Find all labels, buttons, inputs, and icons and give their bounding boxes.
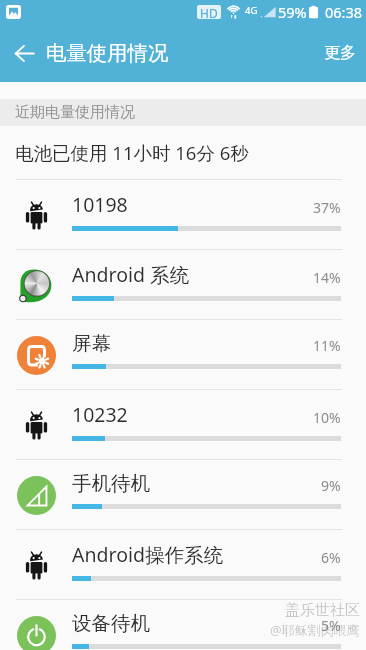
button[interactable]: 屏幕 — [0, 319, 366, 389]
button[interactable]: 手机待机 — [0, 459, 366, 529]
button[interactable]: 更多 — [310, 29, 366, 77]
button[interactable]: Back — [0, 29, 48, 77]
staticText: Android操作系统 — [72, 541, 223, 568]
staticText: 14% — [313, 268, 341, 287]
staticText: 10232 — [72, 401, 128, 428]
staticText: 屏幕 — [72, 331, 111, 356]
staticText: HD — [200, 5, 218, 19]
staticText: 06:38 — [325, 2, 363, 22]
staticText: 5% — [321, 616, 341, 635]
staticText: 设备待机 — [72, 611, 150, 636]
staticText: 59% — [278, 2, 307, 22]
button[interactable]: 10198 — [0, 179, 366, 249]
button[interactable]: 设备待机 — [0, 599, 366, 650]
staticText: 更多 — [324, 43, 356, 63]
button[interactable]: 10232 — [0, 389, 366, 459]
button[interactable]: Android 系统 — [0, 249, 366, 319]
staticText: 近期电量使用情况 — [15, 103, 135, 122]
staticText: 6% — [321, 548, 341, 567]
button[interactable]: Android操作系统 — [0, 529, 366, 599]
staticText: 电量使用情况 — [46, 40, 169, 66]
staticText: @耶稣割肉喂鹰 — [270, 621, 360, 639]
staticText: Android 系统 — [72, 261, 190, 288]
staticText: 盖乐世社区 — [285, 601, 360, 620]
staticText: 手机待机 — [72, 471, 150, 496]
staticText: 11% — [313, 336, 341, 355]
staticText: 37% — [313, 198, 341, 217]
staticText: 10% — [313, 408, 341, 427]
staticText: 10198 — [72, 191, 128, 218]
staticText: 电池已使用 11小时 16分 6秒 — [15, 140, 249, 165]
staticText: 4G — [245, 4, 258, 17]
staticText: 9% — [321, 476, 341, 495]
